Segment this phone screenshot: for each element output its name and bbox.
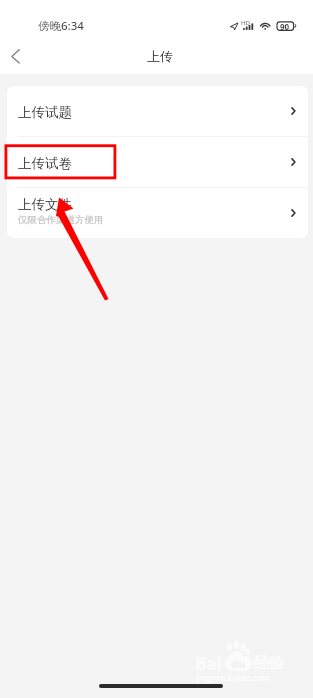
staticText: du [231,656,246,671]
button[interactable]: 上传试卷 [7,137,308,187]
staticText: 经验 [254,654,284,673]
staticText: 上传 [147,48,173,64]
button[interactable]: 上传试题 [7,86,308,136]
staticText: HD [241,19,250,27]
staticText: 上传试题 [18,104,72,121]
staticText: 90 [280,21,290,32]
staticText: 仅限合作渠道方使用 [18,214,104,226]
staticText: 上传文件 [18,196,72,213]
button[interactable]: 上传文件 [7,188,308,238]
staticText: 傍晚6:34 [38,18,84,34]
staticText: 上传试卷 [18,155,72,172]
button[interactable]: Back [0,38,34,74]
